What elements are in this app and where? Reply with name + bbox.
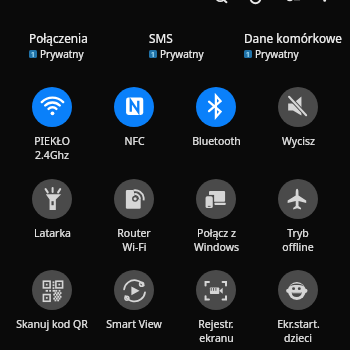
staticText: Windows — [194, 240, 239, 254]
staticText: 1 — [31, 50, 36, 58]
staticText: SMS — [149, 30, 173, 46]
button[interactable]: Tryb — [257, 179, 339, 254]
staticText: 1 — [246, 50, 251, 58]
staticText: Skanuj kod QR — [16, 317, 88, 331]
staticText: Prywatny — [40, 47, 84, 61]
staticText: dzieci — [284, 331, 312, 345]
button[interactable]: Bluetooth — [175, 87, 257, 148]
other: Połącz z — [196, 179, 236, 219]
staticText: Router — [117, 226, 151, 240]
button[interactable]: Router — [93, 179, 175, 254]
staticText: 1 — [151, 50, 156, 58]
button[interactable]: Smart View — [93, 270, 175, 331]
staticText: Smart View — [106, 317, 162, 331]
other: Smart View — [114, 270, 154, 310]
other: NFC — [114, 87, 154, 127]
other: Bluetooth — [196, 87, 236, 127]
staticText: Prywatny — [255, 47, 299, 61]
staticText: NFC — [124, 134, 145, 148]
button[interactable]: Połącz z — [175, 179, 257, 254]
staticText: Wycisz — [282, 134, 315, 148]
staticText: Tryb — [287, 226, 309, 240]
staticText: 2.4Ghz — [35, 148, 69, 162]
button[interactable]: Rejestr. — [175, 270, 257, 345]
staticText: offline — [282, 240, 314, 254]
staticText: Dane komórkowe — [244, 30, 342, 46]
button[interactable]: Latarka — [11, 179, 93, 240]
staticText: Latarka — [34, 226, 71, 240]
staticText: Rejestr. — [198, 317, 234, 331]
other: Wycisz — [278, 87, 318, 127]
other: Latarka — [32, 179, 72, 219]
button[interactable]: NFC — [93, 87, 175, 148]
button[interactable]: Ekr.start. — [257, 270, 339, 345]
button[interactable]: SMS — [149, 30, 233, 61]
button[interactable]: PIEKŁO — [11, 87, 93, 162]
other: Ekr.start. — [278, 270, 318, 310]
staticText: Połącz z — [197, 226, 236, 240]
staticText: Wi-Fi — [122, 240, 147, 254]
staticText: PIEKŁO — [34, 134, 70, 148]
button[interactable]: Wycisz — [257, 87, 339, 148]
button[interactable]: Skanuj kod QR — [11, 270, 93, 331]
other: Skanuj kod QR — [32, 270, 72, 310]
other: Rejestr. — [196, 270, 236, 310]
staticText: Ekr.start. — [277, 317, 320, 331]
button[interactable]: Dane komórkowe — [244, 30, 350, 61]
other: Tryb — [278, 179, 318, 219]
other: Router — [114, 179, 154, 219]
staticText: ekranu — [199, 331, 234, 345]
staticText: Bluetooth — [192, 134, 241, 148]
button[interactable]: Połączenia — [29, 30, 116, 61]
other: PIEKŁO — [32, 87, 72, 127]
staticText: Prywatny — [160, 47, 204, 61]
staticText: Połączenia — [29, 30, 88, 46]
